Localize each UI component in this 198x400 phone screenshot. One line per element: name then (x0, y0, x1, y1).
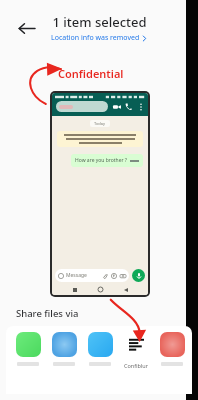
staticText: Message (66, 272, 87, 279)
button[interactable]: Share target (154, 332, 190, 366)
staticText: Confidential (58, 66, 124, 81)
button[interactable]: Call (124, 102, 133, 111)
button[interactable]: More options (136, 102, 145, 111)
button[interactable]: Confiblur (118, 332, 154, 369)
button[interactable]: Message (55, 269, 129, 282)
button[interactable]: Share target (10, 332, 46, 366)
button[interactable]: Back (122, 286, 129, 293)
button[interactable]: Share target (46, 332, 82, 366)
other: Rupee (111, 273, 117, 279)
button[interactable]: Recents (71, 286, 78, 293)
button[interactable]: Home (97, 286, 104, 293)
staticText: 1 item selected (52, 13, 147, 31)
other: Camera (120, 273, 126, 279)
other: Attach (102, 273, 108, 279)
button[interactable]: Location info was removed (51, 33, 147, 43)
button[interactable]: Voice message (132, 269, 145, 282)
button[interactable] (56, 101, 108, 112)
staticText: Confiblur (124, 362, 148, 369)
staticText: How are you brother ? (75, 157, 128, 164)
staticText: Today (94, 121, 106, 126)
button[interactable]: Share target (82, 332, 118, 366)
button[interactable] (61, 134, 139, 144)
button[interactable]: Video call (112, 102, 121, 111)
staticText: Location info was removed (51, 33, 140, 43)
staticText: Share files via (16, 307, 79, 320)
button[interactable]: Back (12, 14, 40, 42)
